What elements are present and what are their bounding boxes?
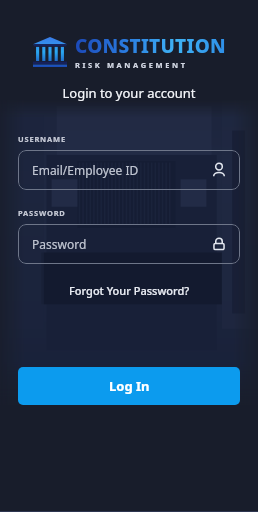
button[interactable]: Password: [18, 224, 240, 264]
staticText: Log In: [109, 377, 150, 395]
staticText: Email/Employee ID: [32, 162, 212, 178]
staticText: Forgot Your Password?: [69, 283, 190, 298]
staticText: CONSTITUTION: [75, 33, 226, 59]
button[interactable]: Email/Employee ID: [18, 150, 240, 190]
other: Username: [212, 163, 226, 177]
button[interactable]: Log In: [18, 367, 240, 405]
other: Password: [212, 237, 226, 251]
staticText: RISK MANAGEMENT: [75, 60, 188, 70]
staticText: PASSWORD: [18, 208, 66, 218]
button[interactable]: Forgot Your Password?: [63, 280, 196, 301]
staticText: Password: [32, 236, 212, 252]
staticText: Login to your account: [0, 84, 258, 102]
staticText: USERNAME: [18, 134, 66, 144]
